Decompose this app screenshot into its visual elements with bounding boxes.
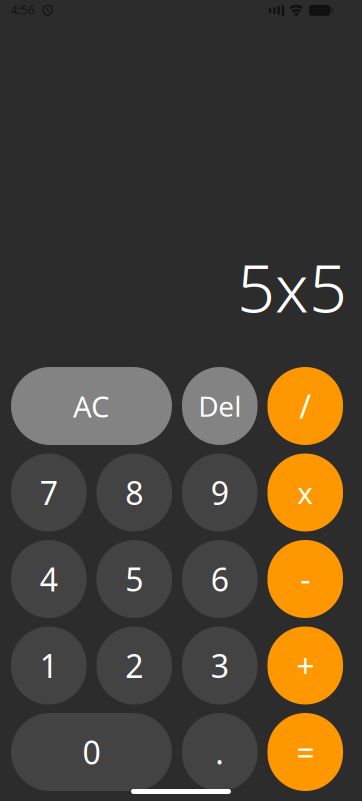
staticText: 5 (125, 558, 143, 600)
staticText: AC (73, 386, 110, 425)
button[interactable]: 5 (96, 540, 172, 618)
staticText: 7 (40, 471, 58, 514)
staticText: x (297, 473, 313, 512)
button[interactable]: 0 (11, 713, 172, 791)
staticText: 1 (40, 644, 58, 687)
button[interactable]: 3 (182, 626, 257, 704)
button[interactable]: 7 (11, 453, 86, 531)
staticText: . (215, 731, 224, 773)
button[interactable]: . (182, 713, 257, 791)
button[interactable]: / (267, 367, 343, 445)
button[interactable]: 6 (182, 540, 257, 618)
button[interactable]: 4 (11, 540, 86, 618)
button[interactable]: 1 (11, 626, 86, 704)
staticText: - (300, 558, 310, 600)
staticText: Del (198, 387, 241, 425)
button[interactable]: + (267, 626, 343, 704)
button[interactable]: 9 (182, 453, 257, 531)
button[interactable]: 2 (96, 626, 172, 704)
staticText: 5x5 (237, 242, 347, 331)
staticText: 0 (82, 731, 100, 773)
button[interactable]: 8 (96, 453, 172, 531)
staticText: 4:56 (11, 2, 35, 18)
staticText: + (296, 644, 314, 687)
staticText: 3 (211, 644, 229, 687)
button[interactable]: AC (11, 367, 172, 445)
staticText: / (299, 385, 311, 427)
staticText: 6 (211, 558, 229, 600)
button[interactable]: Del (182, 367, 257, 445)
staticText: 8 (125, 471, 143, 514)
staticText: = (296, 731, 314, 773)
staticText: 9 (211, 471, 229, 514)
button[interactable]: - (267, 540, 343, 618)
staticText: 4 (40, 558, 58, 600)
button[interactable]: = (267, 713, 343, 791)
button[interactable]: x (267, 453, 343, 531)
staticText: 2 (125, 644, 143, 687)
